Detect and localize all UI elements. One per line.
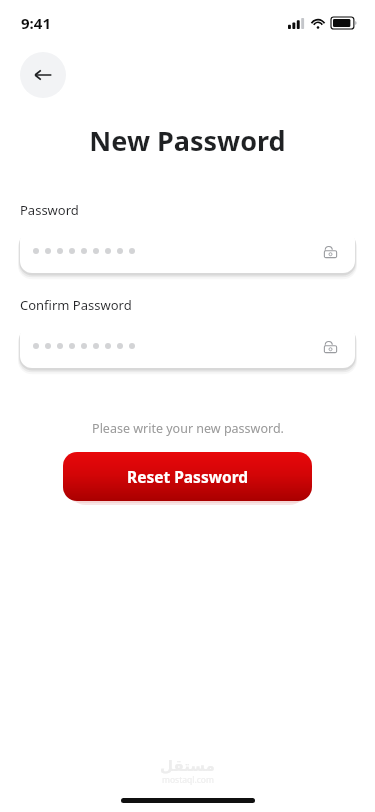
button[interactable]: Toggle password visibility bbox=[20, 229, 355, 273]
staticText: mostaql.com bbox=[162, 774, 214, 786]
button[interactable]: Toggle password visibility bbox=[319, 335, 341, 357]
staticText: Please write your new password. bbox=[92, 420, 284, 437]
button[interactable]: Toggle password visibility bbox=[20, 324, 355, 368]
staticText: Password bbox=[20, 201, 79, 219]
button[interactable]: Reset Password bbox=[63, 452, 312, 501]
staticText: Reset Password bbox=[127, 466, 249, 487]
button[interactable]: Toggle password visibility bbox=[319, 240, 341, 262]
button[interactable]: Back bbox=[20, 52, 66, 98]
staticText: New Password bbox=[89, 122, 286, 159]
staticText: 9:41 bbox=[21, 13, 51, 33]
staticText: Confirm Password bbox=[20, 296, 132, 314]
staticText: مستقل bbox=[160, 757, 215, 774]
